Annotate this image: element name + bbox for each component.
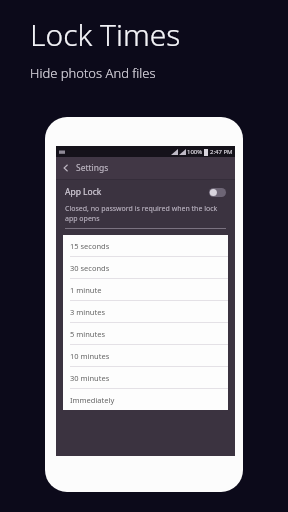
button[interactable]: App Lock	[56, 180, 235, 204]
staticText: 15 seconds	[70, 241, 110, 251]
button[interactable]: App Lock toggle	[209, 188, 226, 197]
staticText: Settings	[76, 162, 109, 174]
button[interactable]: 15 seconds	[63, 235, 228, 257]
staticText: 1 minute	[70, 285, 102, 295]
staticText: Hide photos And files	[30, 64, 156, 82]
button[interactable]: Immediately	[63, 389, 228, 410]
staticText: Immediately	[70, 395, 115, 405]
button[interactable]: 10 minutes	[63, 345, 228, 367]
staticText: 2:47 PM	[210, 148, 233, 156]
button[interactable]: 30 seconds	[63, 257, 228, 279]
staticText: 30 minutes	[70, 373, 110, 383]
button[interactable]: Back	[60, 162, 72, 174]
staticText: Closed, no password is required when the…	[65, 204, 226, 224]
button[interactable]: Back	[56, 157, 235, 179]
staticText: Lock Times	[30, 14, 181, 55]
staticText: 10 minutes	[70, 351, 110, 361]
staticText: App Lock	[65, 186, 102, 198]
button[interactable]: 3 minutes	[63, 301, 228, 323]
button[interactable]: 5 minutes	[63, 323, 228, 345]
button[interactable]: 1 minute	[63, 279, 228, 301]
staticText: 30 seconds	[70, 263, 110, 273]
button[interactable]: 30 minutes	[63, 367, 228, 389]
staticText: 5 minutes	[70, 329, 105, 339]
staticText: 3 minutes	[70, 307, 105, 317]
staticText: 100%	[187, 148, 203, 156]
